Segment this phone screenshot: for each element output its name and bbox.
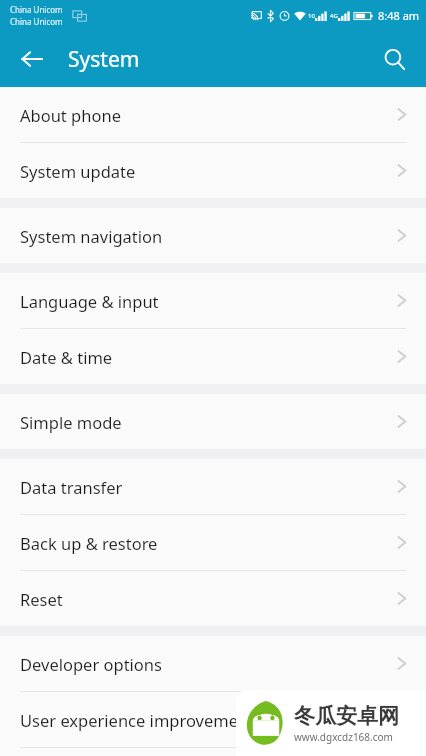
staticText: Data transfer bbox=[20, 476, 393, 498]
staticText: User experience improvement bbox=[20, 709, 393, 731]
button[interactable]: Back bbox=[8, 35, 56, 83]
button[interactable]: System update bbox=[0, 143, 426, 198]
staticText: China Unicom bbox=[10, 16, 63, 27]
staticText: System update bbox=[20, 160, 393, 182]
staticText: 10 bbox=[308, 12, 315, 20]
button[interactable]: Reset bbox=[0, 571, 426, 626]
staticText: www.dgxcdz168.com bbox=[294, 730, 393, 744]
staticText: Date & time bbox=[20, 346, 393, 368]
button[interactable]: Search bbox=[370, 35, 418, 83]
button[interactable]: About phone bbox=[0, 87, 426, 142]
staticText: Back up & restore bbox=[20, 532, 393, 554]
staticText: 4G bbox=[330, 12, 338, 20]
staticText: About phone bbox=[20, 104, 393, 126]
staticText: 冬瓜安卓网 bbox=[294, 703, 399, 729]
staticText: Reset bbox=[20, 588, 393, 610]
button[interactable]: System navigation bbox=[0, 208, 426, 263]
button[interactable]: User experience improvement bbox=[0, 692, 426, 747]
button[interactable]: Language & input bbox=[0, 273, 426, 328]
staticText: China Unicom bbox=[10, 4, 63, 15]
button[interactable]: Data transfer bbox=[0, 459, 426, 514]
staticText: Simple mode bbox=[20, 411, 393, 433]
staticText: System navigation bbox=[20, 225, 393, 247]
button[interactable]: Date & time bbox=[0, 329, 426, 384]
button[interactable]: Back up & restore bbox=[0, 515, 426, 570]
staticText: Language & input bbox=[20, 290, 393, 312]
button[interactable]: Simple mode bbox=[0, 394, 426, 449]
staticText: 8:48 am bbox=[378, 8, 420, 23]
staticText: Developer options bbox=[20, 653, 393, 675]
button[interactable]: Developer options bbox=[0, 636, 426, 691]
staticText: System bbox=[68, 45, 140, 74]
